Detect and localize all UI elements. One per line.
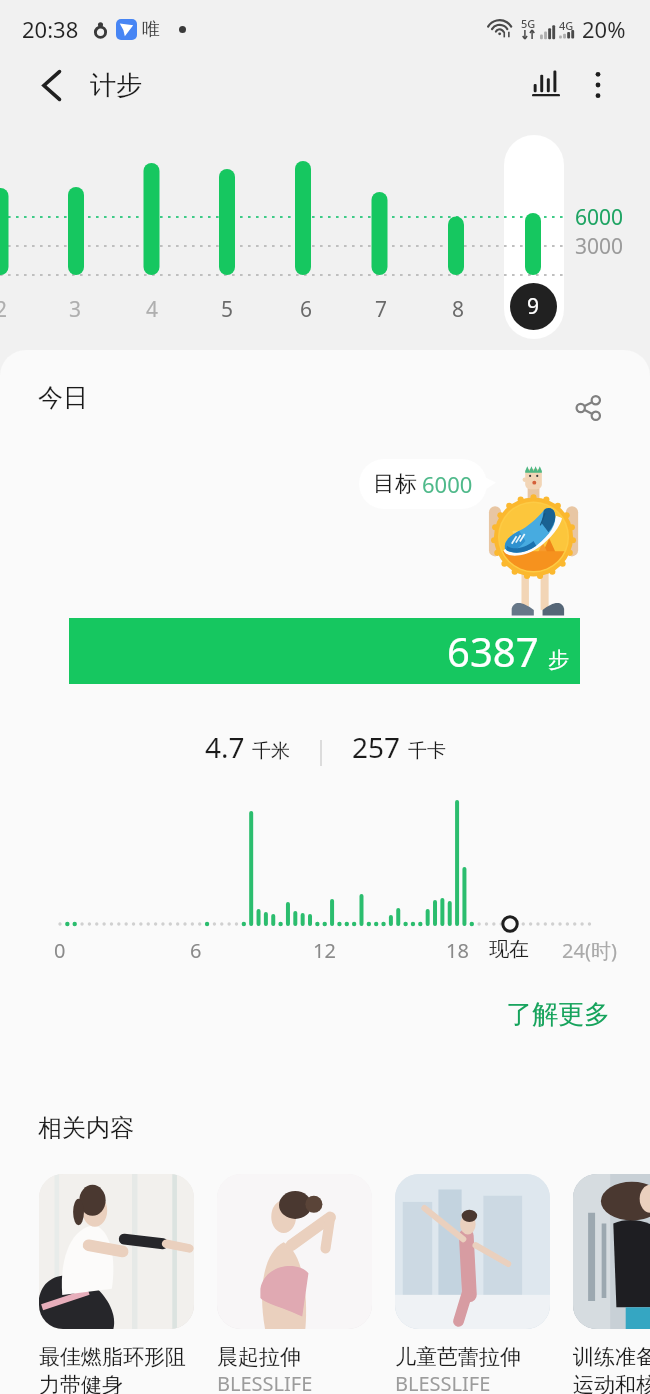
staticText: 24(时) — [562, 937, 617, 964]
staticText: 20:38 — [22, 14, 79, 44]
staticText: 儿童芭蕾拉伸 — [395, 1344, 521, 1370]
button[interactable]: 训练准备 运动和核 — [573, 1174, 650, 1394]
staticText: 257 — [352, 728, 401, 766]
staticText: 9 — [527, 292, 540, 321]
staticText: 4.7 — [205, 728, 245, 766]
staticText: 20% — [582, 14, 626, 44]
staticText: 相关内容 — [38, 1113, 134, 1143]
staticText: 18 — [446, 937, 469, 964]
button[interactable] — [504, 135, 564, 339]
staticText: 0 — [54, 937, 66, 964]
staticText: 晨起拉伸 — [217, 1344, 301, 1370]
button[interactable]: Share — [566, 386, 610, 430]
button[interactable]: Back — [25, 59, 77, 111]
staticText: 6387 — [447, 624, 539, 678]
button[interactable]: Statistics — [520, 59, 572, 111]
staticText: 3000 — [575, 232, 624, 261]
staticText: BLESSLIFE — [395, 1370, 491, 1394]
button[interactable]: More options — [572, 59, 624, 111]
staticText: 现在 — [489, 937, 529, 962]
button[interactable]: 了解更多 — [506, 998, 610, 1031]
button[interactable]: 儿童芭蕾拉伸 — [395, 1174, 550, 1394]
button[interactable]: 最佳燃脂环形阻 力带健身 — [39, 1174, 194, 1394]
staticText: 7 — [375, 295, 388, 324]
staticText: 5 — [221, 295, 234, 324]
staticText: 目标 — [373, 470, 417, 498]
staticText: 12 — [313, 937, 336, 964]
staticText: 今日 — [38, 382, 88, 413]
staticText: 计步 — [90, 69, 142, 102]
staticText: 4G — [559, 18, 574, 33]
staticText: 8 — [452, 295, 465, 324]
staticText: 千卡 — [408, 739, 446, 763]
staticText: 千米 — [252, 739, 290, 763]
staticText: 2 — [0, 295, 8, 324]
staticText: 唯 — [142, 18, 160, 41]
staticText: 最佳燃脂环形阻 力带健身 — [39, 1344, 186, 1394]
staticText: 3 — [69, 295, 82, 324]
staticText: 步 — [548, 647, 569, 673]
staticText: BLESSLIFE — [217, 1370, 313, 1394]
staticText: 6000 — [575, 203, 624, 232]
staticText: 5G — [521, 16, 536, 31]
staticText: 4 — [146, 295, 159, 324]
staticText: 6 — [300, 295, 313, 324]
staticText: 6 — [190, 937, 202, 964]
staticText: 6000 — [422, 469, 473, 499]
button[interactable]: 晨起拉伸 — [217, 1174, 372, 1394]
staticText: 训练准备 运动和核 — [573, 1344, 650, 1394]
